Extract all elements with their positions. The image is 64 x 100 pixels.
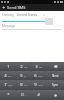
staticText: DEF: [39, 66, 43, 68]
staticText: JKL: [24, 75, 27, 77]
staticText: #: [37, 92, 40, 98]
staticText: 2: [20, 64, 23, 70]
staticText: 5: [20, 73, 23, 79]
button[interactable]: 1: [0, 62, 16, 71]
staticText: PQRS: [8, 84, 13, 86]
staticText: *: [7, 92, 10, 98]
staticText: 3: [35, 64, 38, 70]
staticText: GHI: [8, 75, 12, 77]
staticText: 7: [4, 82, 7, 88]
staticText: Next: [52, 74, 59, 78]
button[interactable]: 6: [31, 71, 46, 80]
button[interactable]: *: [0, 90, 16, 100]
staticText: United States: [17, 13, 38, 17]
staticText: TUV: [24, 84, 28, 86]
staticText: 9: [34, 82, 37, 88]
staticText: 1: [7, 64, 10, 70]
staticText: Country: [2, 13, 14, 17]
staticText: +: [25, 94, 27, 96]
other: Voice input: [53, 93, 58, 98]
staticText: 4: [4, 73, 7, 79]
staticText: MNO: [38, 75, 43, 77]
button[interactable]: United States: [17, 13, 45, 17]
button[interactable]: 4: [0, 71, 16, 80]
button[interactable]: Next: [46, 71, 64, 80]
button[interactable]: Back: [0, 4, 7, 11]
other: Backspace: [53, 64, 58, 69]
button[interactable]: 9: [31, 80, 46, 90]
staticText: 0: [21, 92, 24, 98]
staticText: Sym: [52, 83, 58, 87]
staticText: ABC: [24, 66, 28, 68]
staticText: WXYZ: [38, 84, 43, 86]
button[interactable]: 5: [16, 71, 31, 80]
button[interactable]: Backspace: [46, 62, 64, 71]
staticText: 8: [20, 82, 23, 88]
button[interactable]: #: [31, 90, 46, 100]
button[interactable]: Sym: [46, 80, 64, 90]
button[interactable]: Voice input: [46, 90, 64, 100]
button[interactable]: 2: [16, 62, 31, 71]
button[interactable]: 0: [16, 90, 31, 100]
button[interactable]: 8: [16, 80, 31, 90]
staticText: Message: [2, 24, 16, 28]
staticText: Send SMS: [7, 5, 26, 10]
button[interactable]: 3: [31, 62, 46, 71]
button[interactable]: 7: [0, 80, 16, 90]
staticText: 6: [34, 73, 37, 79]
